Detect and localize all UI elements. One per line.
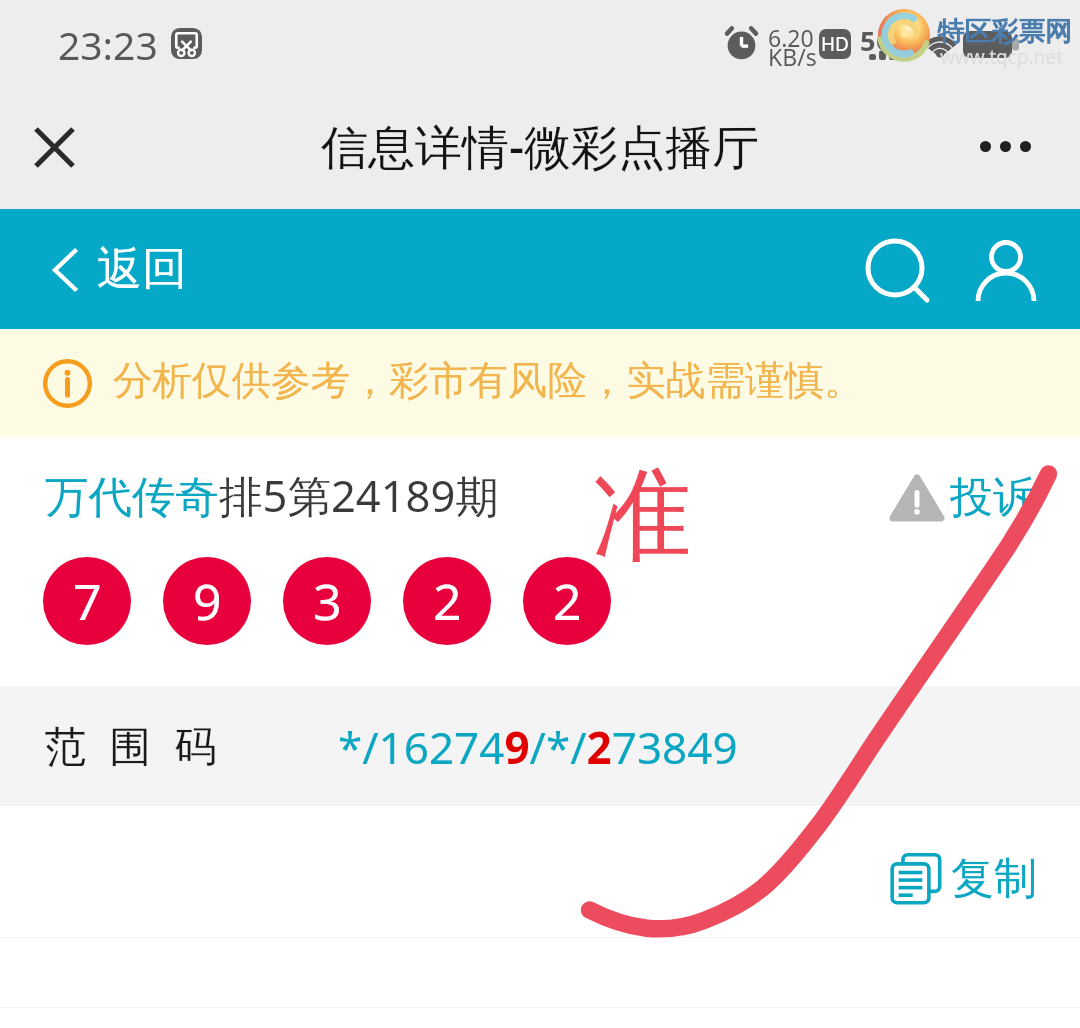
button[interactable]: Close: [16, 109, 92, 185]
staticText: 2: [553, 567, 582, 635]
staticText: 2: [433, 567, 462, 635]
staticText: 6.20: [768, 22, 814, 53]
staticText: 返回: [97, 241, 187, 298]
button[interactable]: Profile: [966, 229, 1046, 309]
button[interactable]: 复制: [890, 852, 1037, 906]
button[interactable]: Search: [855, 229, 935, 309]
staticText: 万代传奇排5第24189期: [45, 465, 499, 524]
button[interactable]: More options: [965, 111, 1045, 181]
staticText: 5G: [860, 22, 895, 59]
button[interactable]: 投诉: [890, 471, 1036, 525]
staticText: 信息详情-微彩点播厅: [321, 114, 760, 178]
staticText: HD: [821, 31, 849, 57]
staticText: 投诉: [950, 471, 1036, 525]
staticText: 准: [592, 454, 692, 580]
staticText: 范围码: [33, 721, 228, 774]
staticText: 特区彩票网: [937, 15, 1072, 49]
staticText: www.tqcp.net: [940, 44, 1063, 70]
staticText: 3: [313, 567, 342, 635]
staticText: 7: [73, 567, 102, 635]
staticText: */162749/*/273849: [338, 717, 738, 777]
staticText: 9: [193, 567, 222, 635]
staticText: 23:23: [58, 18, 158, 71]
staticText: 复制: [951, 852, 1037, 906]
staticText: 分析仅供参考，彩市有风险，实战需谨慎。: [113, 356, 864, 406]
staticText: KB/s: [768, 41, 817, 72]
button[interactable]: 返回: [54, 241, 187, 298]
